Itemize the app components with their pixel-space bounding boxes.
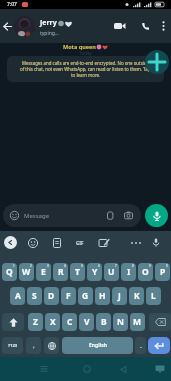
- button[interactable]: F: [61, 287, 76, 305]
- button[interactable]: [155, 9, 171, 43]
- staticText: Message: [24, 212, 50, 220]
- button[interactable]: A: [10, 287, 25, 305]
- staticText: Jerry: [40, 18, 57, 28]
- button[interactable]: ,: [26, 337, 41, 354]
- staticText: H: [99, 290, 106, 302]
- staticText: 5: [81, 264, 83, 268]
- staticText: B: [101, 316, 107, 328]
- button[interactable]: W: [19, 263, 34, 281]
- staticText: T: [75, 266, 80, 278]
- button[interactable]: K: [129, 287, 144, 305]
- button[interactable]: R: [53, 263, 68, 281]
- button[interactable]: E: [36, 263, 51, 281]
- button[interactable]: [154, 363, 166, 375]
- staticText: Messages and calls are end-to-end encryp…: [22, 60, 150, 66]
- button[interactable]: N: [113, 313, 128, 331]
- staticText: M: [133, 316, 142, 328]
- staticText: 8: [132, 264, 134, 268]
- staticText: Z: [33, 316, 38, 328]
- button[interactable]: [82, 364, 92, 374]
- staticText: of this chat, not even WhatsApp, can rea…: [20, 66, 151, 72]
- staticText: A: [15, 290, 21, 302]
- staticText: typing...: [40, 30, 59, 37]
- button[interactable]: [14, 16, 35, 37]
- button[interactable]: [27, 237, 39, 249]
- button[interactable]: [145, 204, 168, 227]
- staticText: F: [66, 290, 71, 302]
- button[interactable]: X: [45, 313, 60, 331]
- button[interactable]: T: [70, 263, 85, 281]
- staticText: P: [160, 266, 166, 278]
- button[interactable]: [39, 364, 49, 374]
- button[interactable]: I: [121, 263, 136, 281]
- staticText: L: [151, 290, 156, 302]
- button[interactable]: Message: [3, 204, 141, 227]
- staticText: V: [84, 316, 90, 328]
- button[interactable]: [130, 237, 142, 249]
- button[interactable]: Jerry: [40, 18, 109, 37]
- staticText: D: [48, 290, 55, 302]
- button[interactable]: O: [138, 263, 153, 281]
- button[interactable]: [135, 9, 155, 43]
- staticText: .: [140, 342, 142, 350]
- button[interactable]: B: [96, 313, 111, 331]
- button[interactable]: Y: [87, 263, 102, 281]
- button[interactable]: P: [155, 263, 170, 281]
- button[interactable]: D: [44, 287, 59, 305]
- button[interactable]: [51, 237, 63, 249]
- button[interactable]: ?123: [2, 337, 23, 354]
- button[interactable]: Q: [2, 263, 17, 281]
- staticText: X: [50, 316, 56, 328]
- staticText: 3: [47, 264, 49, 268]
- button[interactable]: S: [27, 287, 42, 305]
- button[interactable]: [98, 237, 110, 249]
- staticText: S: [32, 290, 37, 302]
- button[interactable]: [4, 236, 17, 249]
- staticText: ?123: [8, 343, 18, 349]
- button[interactable]: H: [95, 287, 110, 305]
- staticText: GIF: [76, 240, 84, 246]
- staticText: Q: [6, 266, 13, 278]
- staticText: K: [134, 290, 140, 302]
- button[interactable]: G: [78, 287, 93, 305]
- staticText: Today: [79, 50, 92, 56]
- staticText: 6: [98, 264, 100, 268]
- button[interactable]: English: [62, 337, 133, 354]
- staticText: 7:07: [7, 1, 17, 8]
- button[interactable]: Messages and calls are end-to-end encryp…: [7, 56, 164, 82]
- staticText: 1: [13, 264, 15, 268]
- button[interactable]: U: [104, 263, 119, 281]
- staticText: 0: [166, 264, 168, 268]
- button[interactable]: [0, 9, 14, 43]
- staticText: O: [142, 266, 149, 278]
- staticText: 4: [64, 264, 66, 268]
- button[interactable]: [149, 313, 171, 331]
- button[interactable]: [150, 237, 162, 249]
- staticText: 9: [149, 264, 151, 268]
- button[interactable]: M: [130, 313, 145, 331]
- button[interactable]: [118, 364, 128, 374]
- button[interactable]: [44, 337, 59, 354]
- staticText: N: [117, 316, 124, 328]
- staticText: 7: [115, 264, 117, 268]
- button[interactable]: .: [135, 337, 146, 354]
- button[interactable]: [109, 9, 131, 43]
- button[interactable]: [148, 337, 170, 354]
- button[interactable]: C: [62, 313, 77, 331]
- staticText: G: [82, 290, 89, 302]
- staticText: Mota queen: [63, 43, 96, 50]
- button[interactable]: Z: [28, 313, 43, 331]
- button[interactable]: J: [112, 287, 127, 305]
- staticText: J: [118, 290, 121, 302]
- staticText: R: [58, 266, 64, 278]
- button[interactable]: GIF: [73, 237, 87, 249]
- staticText: Y: [92, 266, 98, 278]
- button[interactable]: L: [146, 287, 161, 305]
- staticText: to learn more.: [71, 72, 101, 78]
- staticText: ,: [33, 342, 35, 350]
- button[interactable]: [144, 49, 170, 75]
- button[interactable]: [2, 313, 24, 331]
- button[interactable]: V: [79, 313, 94, 331]
- staticText: W: [22, 266, 31, 278]
- staticText: I: [127, 266, 131, 278]
